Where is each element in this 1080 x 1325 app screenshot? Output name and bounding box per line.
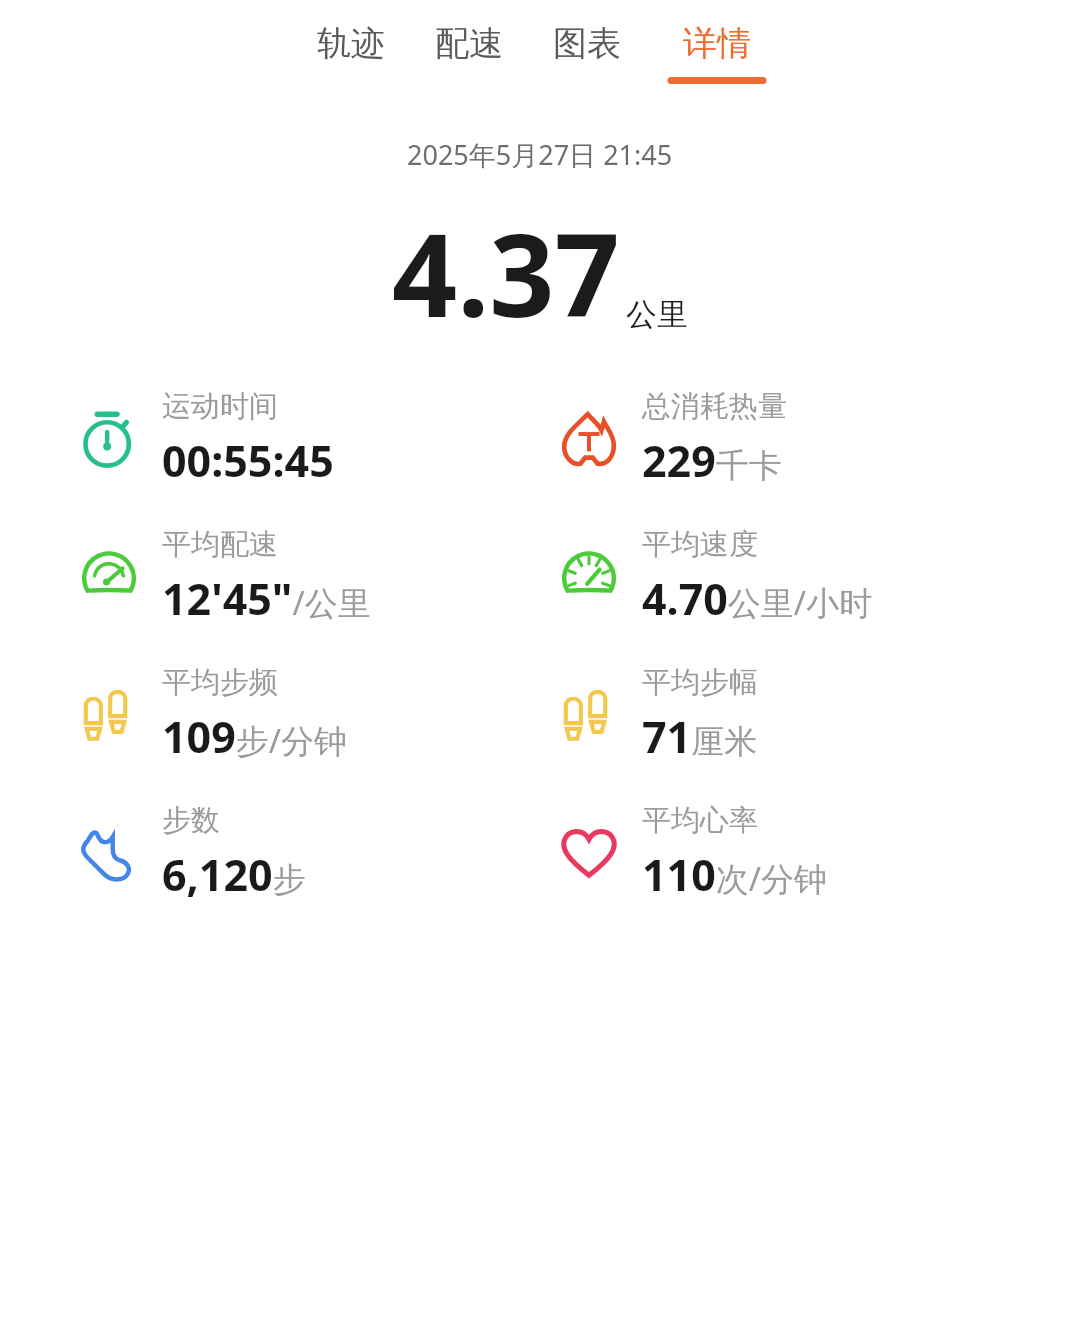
staticText: 平均心率 bbox=[642, 802, 758, 839]
staticText: 平均配速 bbox=[162, 526, 278, 563]
staticText: 109步/分钟 bbox=[162, 707, 348, 766]
button[interactable]: Steps cadence bbox=[554, 664, 758, 766]
other: Average heart rate bbox=[558, 822, 620, 884]
staticText: 详情 bbox=[683, 22, 751, 65]
other: Calories bbox=[558, 408, 620, 470]
staticText: 平均步频 bbox=[162, 664, 278, 701]
button[interactable]: Average speed bbox=[554, 526, 873, 628]
staticText: 公里 bbox=[626, 295, 688, 334]
staticText: 6,120步 bbox=[162, 845, 306, 904]
staticText: 229千卡 bbox=[642, 431, 782, 490]
staticText: 12'45"/公里 bbox=[162, 569, 371, 628]
staticText: 4.37 bbox=[392, 195, 620, 350]
button[interactable]: 详情 bbox=[665, 20, 769, 86]
staticText: 平均步幅 bbox=[642, 664, 758, 701]
staticText: 00:55:45 bbox=[162, 431, 334, 490]
staticText: 运动时间 bbox=[162, 388, 278, 425]
other: Average speed bbox=[558, 546, 620, 608]
button[interactable]: Average pace bbox=[74, 526, 371, 628]
staticText: 110次/分钟 bbox=[642, 845, 828, 904]
staticText: 图表 bbox=[553, 22, 621, 65]
staticText: 71厘米 bbox=[642, 707, 758, 766]
button[interactable]: 图表 bbox=[547, 20, 627, 86]
button[interactable]: Average heart rate bbox=[554, 802, 828, 904]
button[interactable]: 配速 bbox=[429, 20, 509, 86]
staticText: 步数 bbox=[162, 802, 220, 839]
other: Steps cadence bbox=[80, 686, 138, 744]
staticText: 2025年5月27日 21:45 bbox=[407, 136, 673, 173]
staticText: 平均速度 bbox=[642, 526, 758, 563]
button[interactable]: Steps cadence bbox=[74, 664, 348, 766]
staticText: 总消耗热量 bbox=[642, 388, 787, 425]
other: Duration bbox=[78, 408, 140, 470]
other: Average pace bbox=[78, 546, 140, 608]
other: Step count bbox=[78, 822, 140, 884]
staticText: 轨迹 bbox=[317, 22, 385, 65]
staticText: 配速 bbox=[435, 22, 503, 65]
button[interactable]: Duration bbox=[74, 388, 334, 490]
staticText: 4.70公里/小时 bbox=[642, 569, 873, 628]
other: Steps cadence bbox=[560, 686, 618, 744]
button[interactable]: 轨迹 bbox=[311, 20, 391, 86]
button[interactable]: Step count bbox=[74, 802, 306, 904]
button[interactable]: Calories bbox=[554, 388, 787, 490]
